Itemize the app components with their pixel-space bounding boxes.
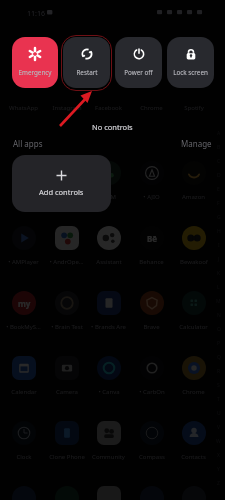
staticText: Manage [181, 138, 212, 149]
staticText: Bē [147, 233, 158, 244]
staticText: Spotify [184, 104, 204, 112]
staticText: No controls [92, 122, 133, 132]
staticText: Chrome [182, 388, 205, 396]
staticText: Assistant [96, 258, 122, 266]
button[interactable]: Emergency [12, 37, 58, 88]
staticText: Add controls [39, 187, 84, 197]
staticText: Behance [139, 258, 164, 266]
staticText: Lock screen [173, 68, 208, 77]
staticText: Emergency [18, 68, 52, 77]
staticText: Calendar [11, 388, 37, 396]
button[interactable]: Power off [115, 37, 162, 88]
staticText: • AJIO [143, 193, 160, 201]
button[interactable]: Add controls [12, 155, 111, 212]
staticText: Calculator [179, 323, 208, 331]
staticText: Amazon [182, 193, 205, 201]
staticText: • AMPlayer [8, 258, 39, 266]
staticText: Clock [16, 453, 32, 461]
staticText: my [18, 298, 31, 309]
staticText: • CarbOn [139, 388, 165, 396]
button[interactable]: Lock screen [167, 37, 214, 88]
staticText: Brave [143, 323, 160, 331]
staticText: Contacts [181, 453, 206, 461]
button[interactable]: Restart [63, 37, 110, 88]
staticText: Restart [76, 68, 98, 77]
staticText: • Brands Are [91, 323, 126, 331]
staticText: Clone Phone [49, 453, 85, 461]
staticText: • Brain Test [51, 323, 83, 331]
staticText: Facebook [95, 104, 122, 112]
staticText: Camera [56, 388, 78, 396]
staticText: • BookMyS… [6, 323, 41, 331]
staticText: All apps [13, 138, 43, 149]
staticText: Chrome [140, 104, 163, 112]
staticText: • Canva [98, 388, 120, 396]
staticText: …OM [101, 193, 116, 201]
staticText: Bewakoof [180, 258, 208, 266]
staticText: • AndrOpe… [49, 258, 84, 266]
staticText: Power off [124, 68, 153, 77]
staticText: Compass [139, 453, 165, 461]
staticText: WhatsApp [9, 104, 38, 112]
staticText: 11:16 [27, 9, 45, 19]
staticText: Community [92, 453, 125, 461]
staticText: Instagram [52, 104, 82, 112]
